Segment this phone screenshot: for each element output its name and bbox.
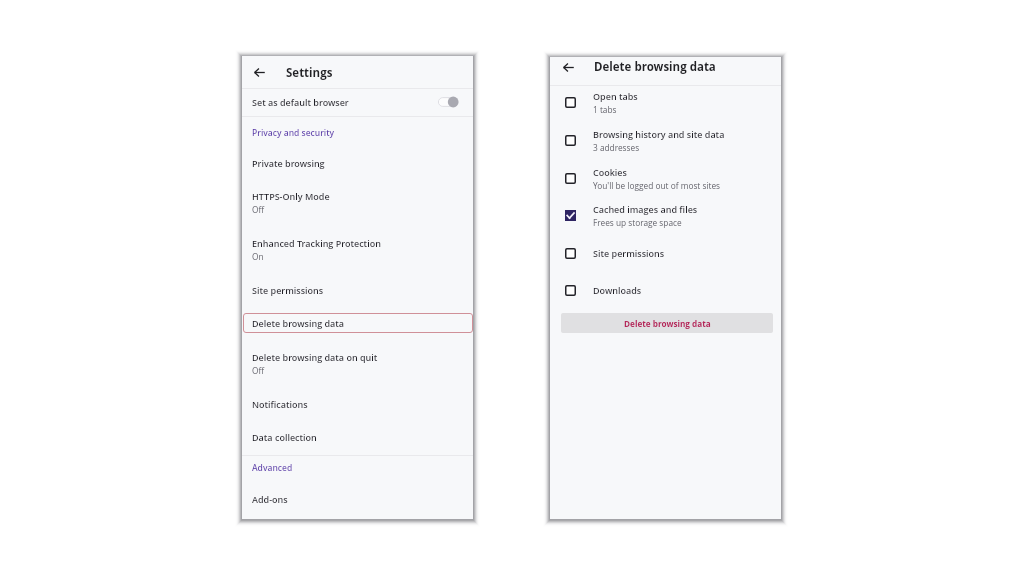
staticText: Private browsing <box>252 157 325 169</box>
staticText: Off <box>252 204 265 215</box>
staticText: Delete browsing data <box>624 318 711 329</box>
button[interactable]: Enhanced Tracking Protection <box>242 233 473 266</box>
button[interactable]: Private browsing <box>242 150 473 176</box>
button[interactable]: Delete browsing data <box>561 313 773 333</box>
staticText: Delete browsing data <box>594 59 716 75</box>
button[interactable]: Privacy and security <box>242 121 473 143</box>
staticText: Set as default browser <box>252 96 349 108</box>
button[interactable]: Navigate up <box>556 55 580 79</box>
button[interactable]: Site permissions <box>242 277 473 303</box>
staticText: Cookies <box>593 166 627 178</box>
button[interactable]: Advanced <box>242 456 473 478</box>
button[interactable]: HTTPS-Only Mode <box>242 186 473 219</box>
staticText: Settings <box>286 65 333 81</box>
staticText: Browsing history and site data <box>593 128 725 140</box>
staticText: 3 addresses <box>593 142 640 153</box>
staticText: Add-ons <box>252 493 288 505</box>
staticText: On <box>252 251 264 262</box>
staticText: Delete browsing data on quit <box>252 351 378 363</box>
staticText: Delete browsing data <box>252 317 345 329</box>
staticText: Open tabs <box>593 90 638 102</box>
staticText: Downloads <box>593 284 642 296</box>
staticText: Enhanced Tracking Protection <box>252 237 381 249</box>
staticText: Cached images and files <box>593 203 698 215</box>
staticText: Off <box>252 365 265 376</box>
button[interactable]: Open tabs <box>550 86 781 119</box>
button[interactable]: Cached images and files <box>550 199 781 232</box>
staticText: Frees up storage space <box>593 217 682 228</box>
button[interactable]: Data collection <box>242 424 473 450</box>
staticText: Advanced <box>252 462 293 474</box>
staticText: Site permissions <box>252 284 324 296</box>
button[interactable]: Navigate up <box>247 60 271 84</box>
button[interactable]: Cookies <box>550 162 781 195</box>
staticText: HTTPS-Only Mode <box>252 190 330 202</box>
button[interactable]: Downloads <box>550 277 781 303</box>
button[interactable]: Site permissions <box>550 240 781 266</box>
button[interactable]: Notifications <box>242 391 473 417</box>
staticText: Privacy and security <box>252 127 335 139</box>
button[interactable]: Set as default browser <box>242 88 473 115</box>
button[interactable]: Delete browsing data <box>243 313 473 333</box>
button[interactable]: Browsing history and site data <box>550 124 781 157</box>
staticText: Notifications <box>252 398 308 410</box>
staticText: You'll be logged out of most sites <box>593 180 721 191</box>
staticText: Site permissions <box>593 247 665 259</box>
staticText: Data collection <box>252 431 317 443</box>
button[interactable]: Add-ons <box>242 486 473 512</box>
button[interactable]: Delete browsing data on quit <box>242 347 473 380</box>
staticText: 1 tabs <box>593 104 617 115</box>
